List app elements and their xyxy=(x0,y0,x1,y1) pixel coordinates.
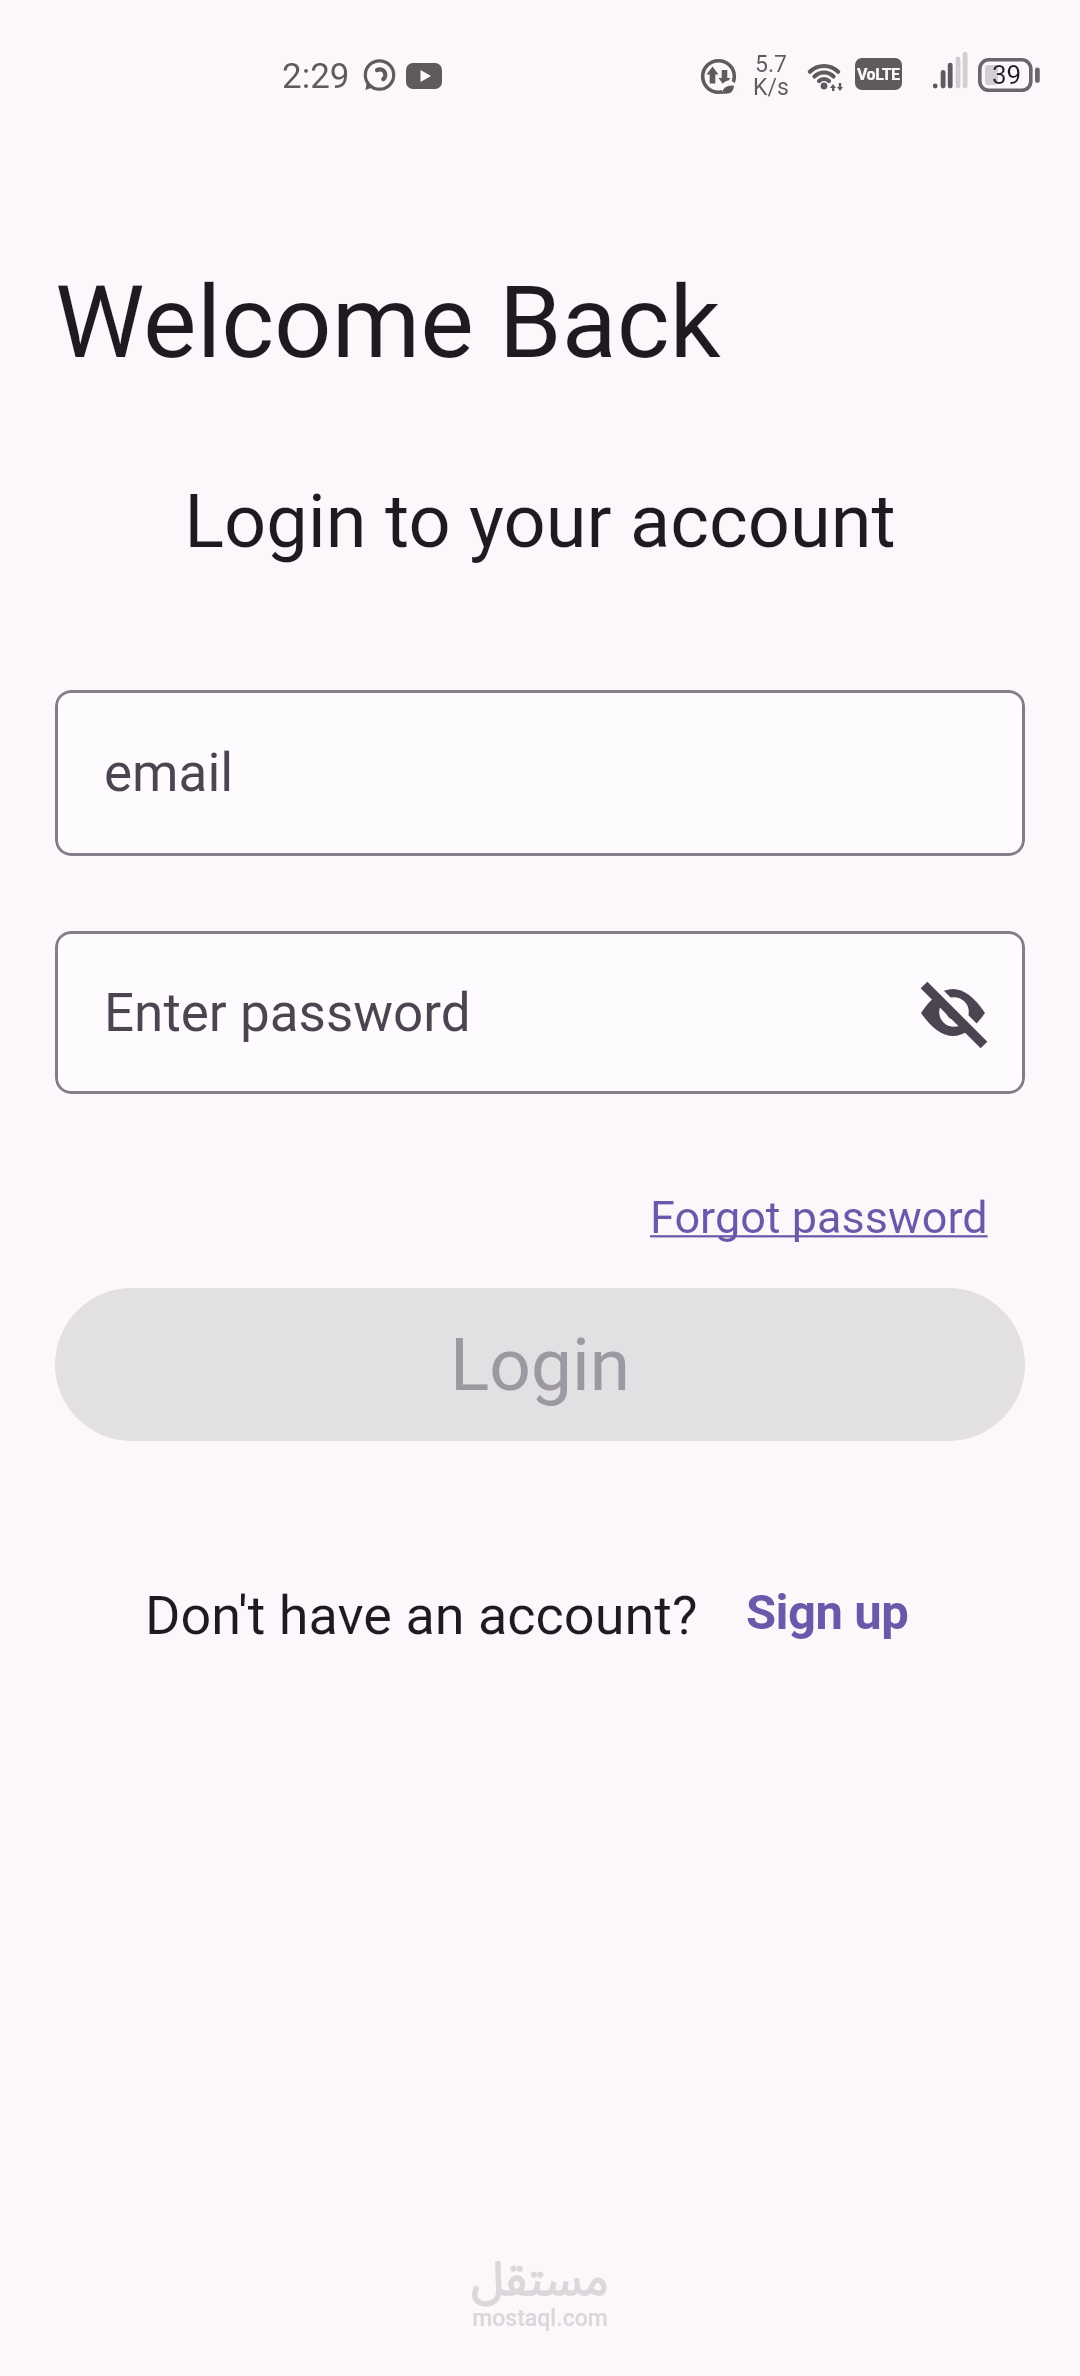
button[interactable]: email xyxy=(55,690,1025,856)
staticText: Enter password xyxy=(104,982,471,1044)
staticText: Don't have an account? xyxy=(145,1584,698,1647)
staticText: 39 xyxy=(992,60,1022,90)
staticText: 5.7 xyxy=(755,51,787,78)
button[interactable]: Sign up xyxy=(746,1584,909,1641)
button[interactable]: Login xyxy=(55,1288,1025,1441)
staticText: مستقل xyxy=(0,2232,1080,2329)
staticText: Login xyxy=(450,1322,631,1408)
staticText: mostaql.com xyxy=(0,2305,1080,2332)
button[interactable] xyxy=(915,975,991,1051)
staticText: Login to your account xyxy=(0,478,1080,565)
button[interactable]: Forgot password xyxy=(650,1191,988,1244)
staticText: 2:29 xyxy=(282,56,350,97)
staticText: K/s xyxy=(753,74,789,101)
staticText: VoLTE xyxy=(857,65,900,84)
button[interactable]: Enter password xyxy=(55,931,1025,1094)
staticText: Welcome Back xyxy=(55,263,721,381)
staticText: email xyxy=(104,742,234,804)
